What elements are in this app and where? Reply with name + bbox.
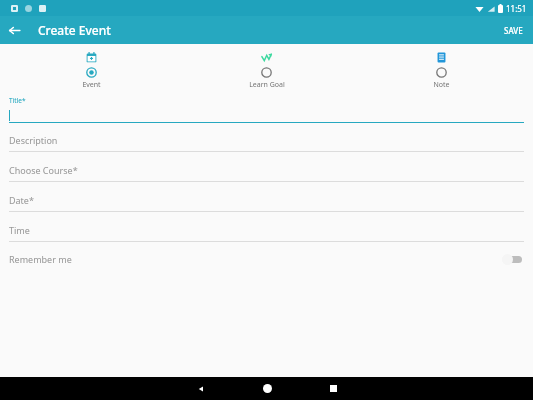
button[interactable]: Remember me xyxy=(9,250,524,268)
staticText: Date* xyxy=(9,194,34,206)
staticText: Event xyxy=(82,80,101,90)
button[interactable]: Back xyxy=(0,16,28,44)
staticText: Description xyxy=(9,134,58,146)
button[interactable]: Recent apps xyxy=(313,377,353,400)
button[interactable]: Date* xyxy=(9,194,524,212)
button[interactable]: Home xyxy=(247,377,287,400)
staticText: 11:51 xyxy=(506,3,527,14)
button[interactable]: Time xyxy=(9,224,524,242)
staticText: Remember me xyxy=(9,253,72,265)
staticText: SAVE xyxy=(504,25,523,36)
button[interactable]: Remember me toggle xyxy=(502,253,524,266)
staticText: Note xyxy=(433,80,450,90)
button[interactable]: Description xyxy=(9,134,524,152)
button[interactable]: Learn Goal xyxy=(179,49,354,92)
staticText: Create Event xyxy=(38,22,111,38)
button[interactable]: Back xyxy=(181,377,221,400)
button[interactable]: Choose Course* xyxy=(9,164,524,182)
button[interactable]: Title* xyxy=(9,96,524,123)
button[interactable]: SAVE xyxy=(494,16,533,44)
button[interactable]: Event xyxy=(4,49,179,92)
staticText: Title* xyxy=(9,96,26,105)
button[interactable]: Note xyxy=(354,49,529,92)
staticText: Time xyxy=(9,224,30,236)
staticText: Choose Course* xyxy=(9,164,78,176)
staticText: Learn Goal xyxy=(249,80,285,90)
